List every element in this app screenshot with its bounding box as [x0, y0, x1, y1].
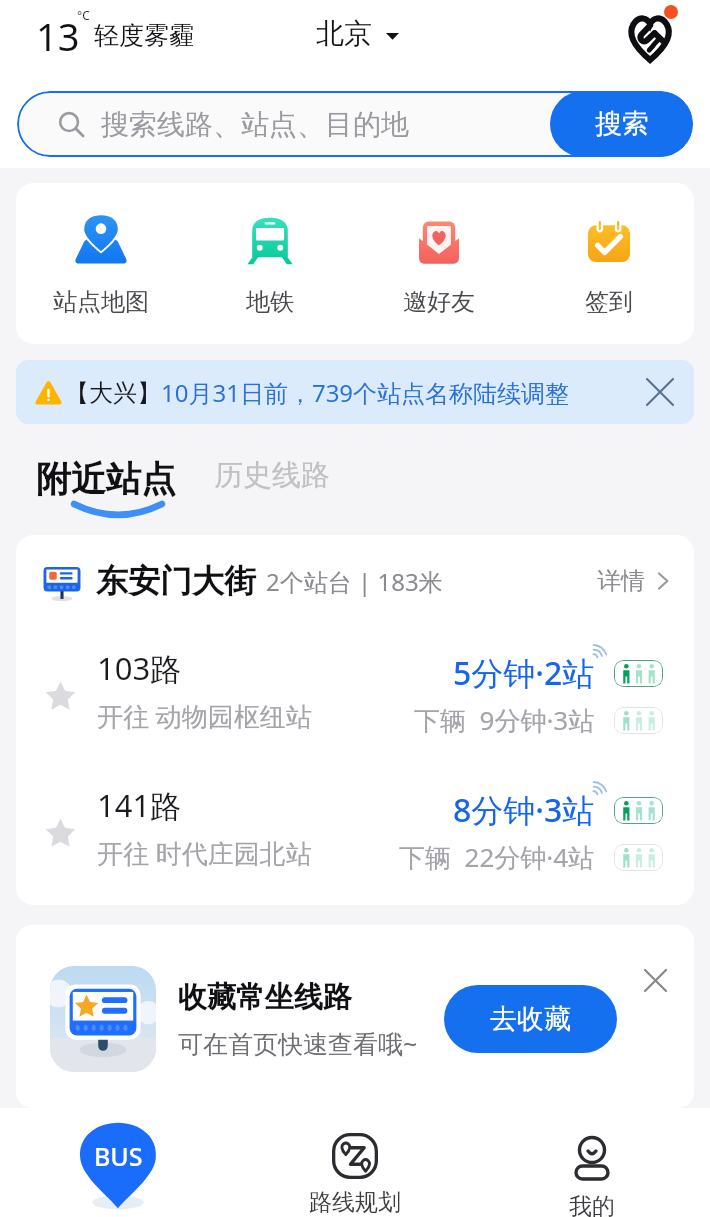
staticText: 我的 [569, 1192, 615, 1217]
staticText: 可在首页快速查看哦~ [178, 1026, 418, 1060]
staticText: BUS [94, 1139, 143, 1173]
button[interactable]: 13 [30, 8, 130, 60]
button[interactable]: 附近站点 [36, 457, 176, 519]
staticText: 103路 [97, 647, 182, 689]
staticText: 开往 动物园枢纽站 [97, 698, 312, 734]
staticText: 【大兴】 [65, 378, 161, 408]
staticText: 下辆 9分钟·3站 [414, 702, 595, 738]
staticText: 下辆 22分钟·4站 [399, 839, 595, 875]
button[interactable]: 搜索线路、站点、目的地 [17, 91, 693, 157]
staticText: 搜索 [595, 107, 649, 141]
button[interactable]: 东安门大街 [40, 535, 672, 627]
button[interactable]: 历史线路 [214, 457, 330, 494]
button[interactable]: 地铁 [185, 183, 354, 344]
button[interactable]: 【大兴】 [16, 360, 694, 424]
staticText: 收藏常坐线路 [178, 979, 352, 1016]
staticText: 8分钟·3站 [453, 788, 595, 832]
button[interactable]: 我的 [473, 1108, 710, 1217]
staticText: 13 [36, 10, 80, 62]
button[interactable]: 搜索 [550, 91, 693, 157]
staticText: °C [77, 7, 90, 23]
button[interactable]: 站点地图 [16, 183, 185, 344]
staticText: 路线规划 [309, 1188, 401, 1217]
button[interactable]: Close notice [638, 370, 682, 414]
staticText: 邀好友 [403, 287, 475, 317]
staticText: 开往 时代庄园北站 [97, 835, 312, 871]
staticText: 搜索线路、站点、目的地 [101, 107, 409, 142]
button[interactable]: 邀好友 [354, 183, 524, 344]
button[interactable]: 签到 [524, 183, 694, 344]
button[interactable]: Community [618, 0, 686, 68]
button[interactable]: 141路 [40, 764, 672, 901]
staticText: 去收藏 [490, 1002, 571, 1036]
staticText: 轻度雾霾 [94, 20, 194, 51]
button[interactable]: Bus [0, 1108, 236, 1217]
staticText: 5分钟·2站 [453, 651, 595, 695]
staticText: 签到 [585, 287, 633, 317]
staticText: 附近站点 [36, 457, 176, 501]
staticText: 详情 [597, 566, 645, 596]
staticText: 141路 [97, 784, 182, 826]
staticText: 北京 [316, 16, 372, 51]
button[interactable]: 去收藏 [444, 985, 617, 1053]
staticText: 地铁 [246, 287, 294, 317]
button[interactable]: Close [635, 960, 675, 1000]
staticText: 2个站台 | 183米 [266, 565, 443, 598]
button[interactable]: 路线规划 [236, 1108, 473, 1217]
staticText: 10月31日前，739个站点名称陆续调整 [161, 376, 570, 409]
button[interactable]: 103路 [40, 627, 672, 764]
staticText: 东安门大街 [96, 561, 256, 601]
staticText: 站点地图 [53, 287, 149, 317]
button[interactable]: 北京 [316, 16, 399, 51]
staticText: 历史线路 [214, 457, 330, 494]
